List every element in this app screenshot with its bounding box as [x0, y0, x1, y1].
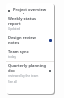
staticText: Updated [8, 27, 21, 31]
staticText: Project overview panel [13, 7, 54, 14]
other: Unread [49, 39, 52, 42]
button[interactable]: See all [6, 80, 54, 84]
staticText: Quarterly planning doc [8, 63, 48, 73]
staticText: Team sync [8, 49, 29, 54]
button[interactable]: Design review notes [6, 35, 54, 45]
staticText: See all [8, 80, 18, 84]
button[interactable]: Weekly status report [6, 16, 54, 31]
button[interactable]: Menu [6, 7, 54, 14]
staticText: Weekly status report [8, 16, 48, 26]
staticText: today [8, 55, 16, 59]
staticText: Design review notes [8, 35, 48, 45]
button[interactable]: Quarterly planning doc [6, 63, 54, 78]
staticText: reviewed by the team [8, 74, 39, 78]
button[interactable]: Team sync [6, 49, 54, 59]
